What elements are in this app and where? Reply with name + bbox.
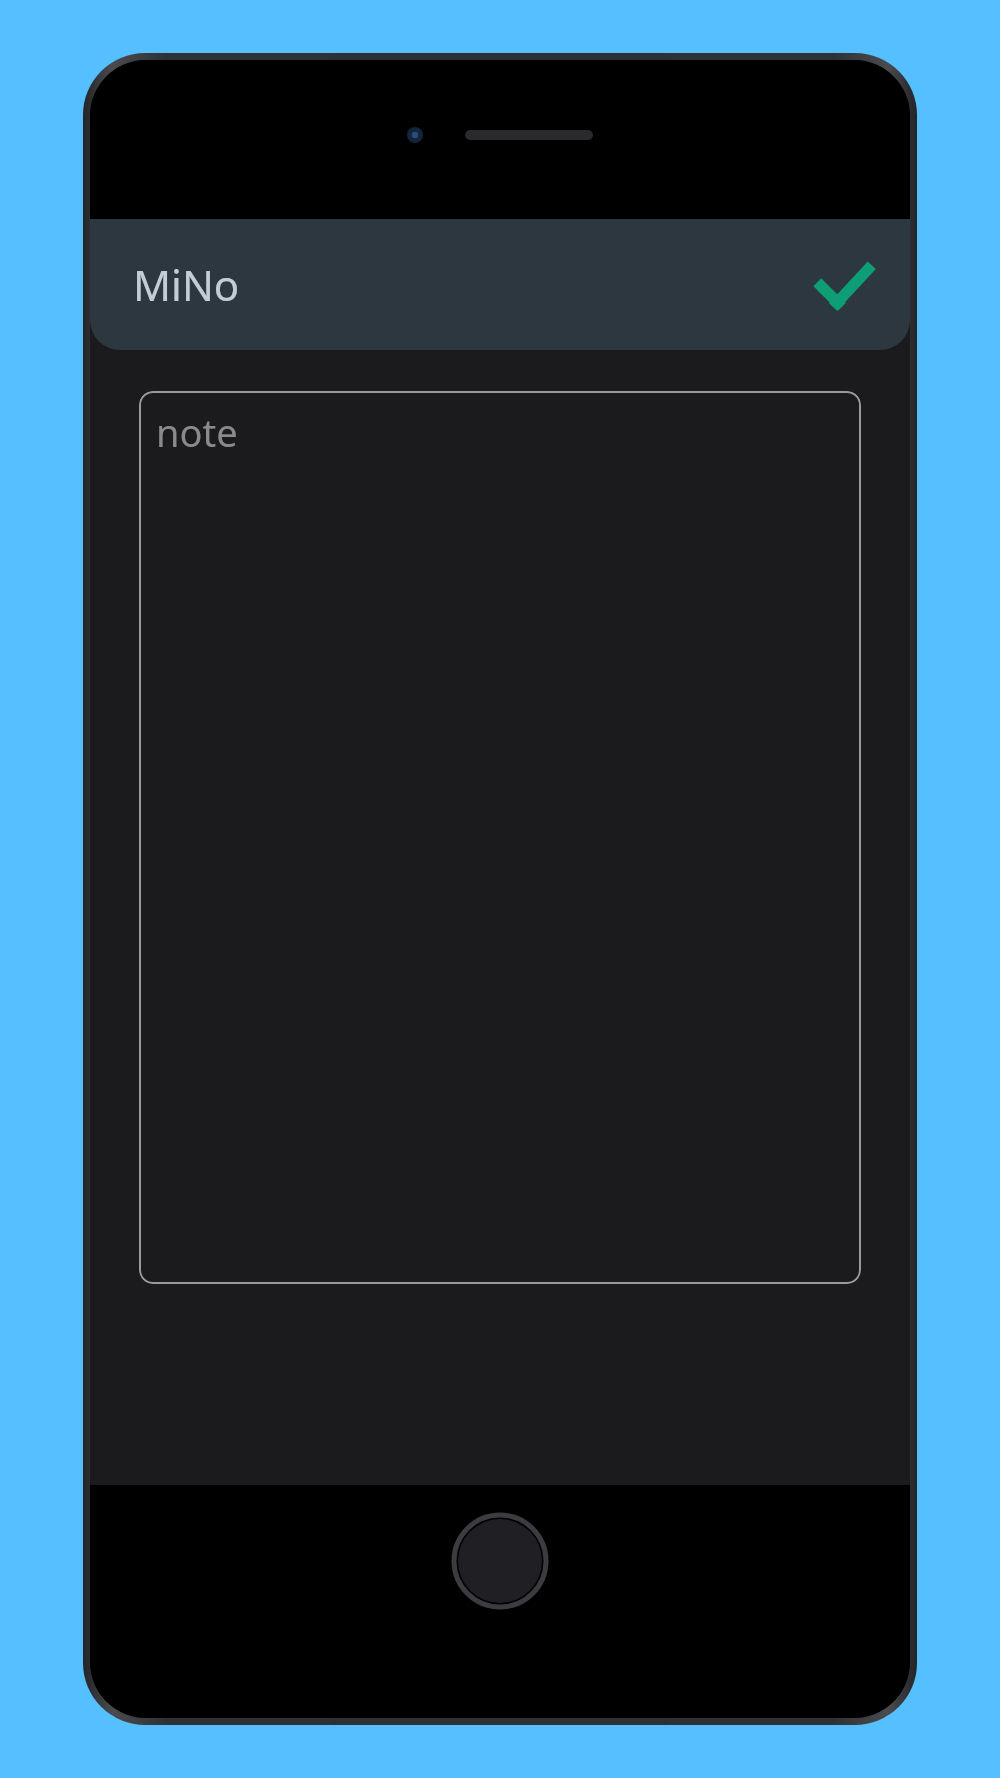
button[interactable]: Save note xyxy=(802,243,886,327)
staticText: MiNo xyxy=(133,256,240,313)
staticText: note xyxy=(156,406,238,458)
other: Home xyxy=(452,1513,548,1609)
button[interactable]: note xyxy=(139,391,861,1284)
